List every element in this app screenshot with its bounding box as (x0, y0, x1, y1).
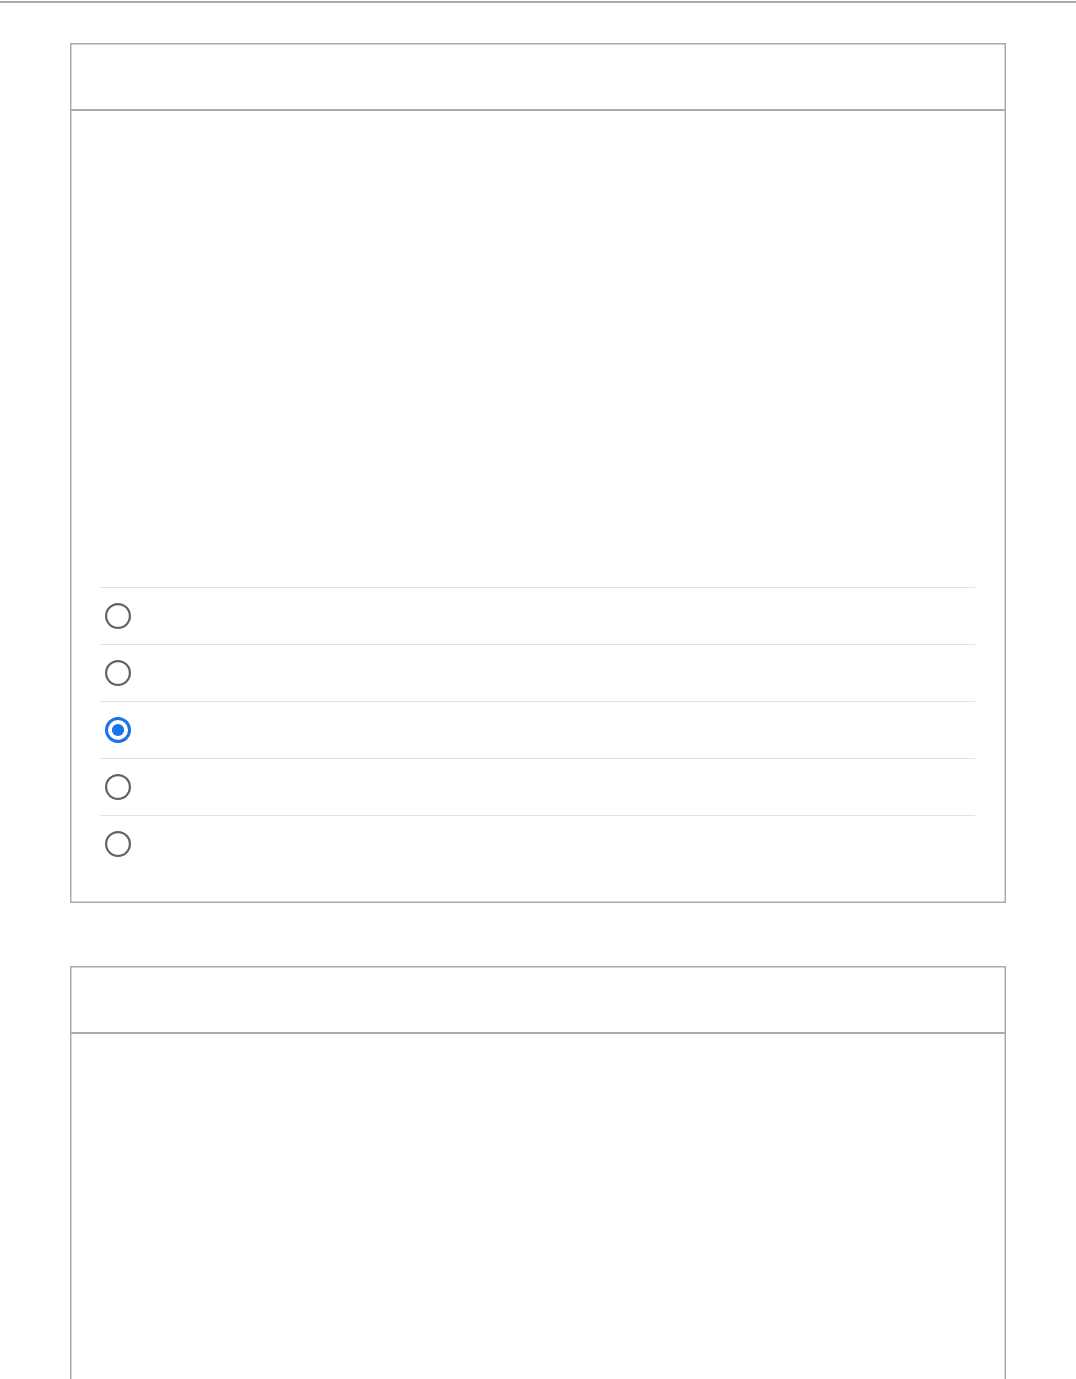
button[interactable]: Option 3 (70, 701, 1006, 758)
button[interactable]: Option 1 (70, 587, 1006, 644)
button[interactable]: Option 2 (70, 644, 1006, 701)
button[interactable]: Option 5 (70, 815, 1006, 872)
button[interactable]: Option 4 (70, 758, 1006, 815)
